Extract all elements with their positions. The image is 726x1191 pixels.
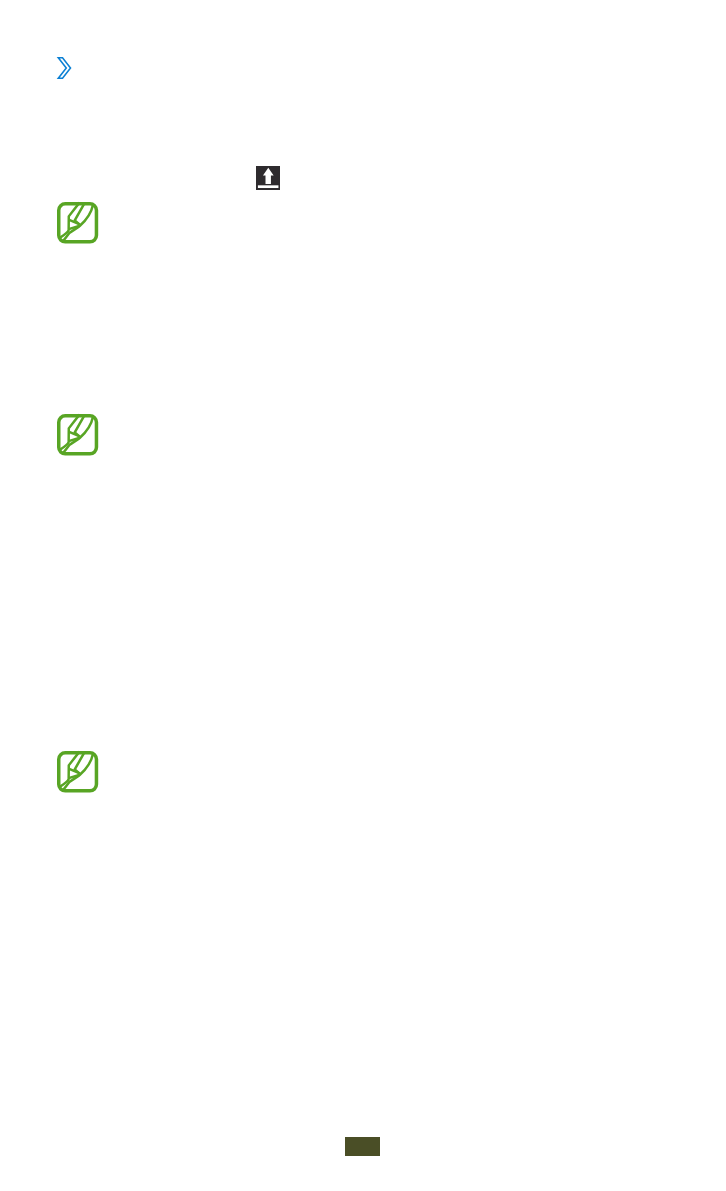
button[interactable]: S Note <box>57 751 99 793</box>
button[interactable]: Upload <box>256 166 280 190</box>
button[interactable]: Next <box>56 57 72 79</box>
button[interactable]: S Note <box>57 414 99 456</box>
other: Upload <box>256 166 280 190</box>
button[interactable]: S Note <box>57 202 99 244</box>
